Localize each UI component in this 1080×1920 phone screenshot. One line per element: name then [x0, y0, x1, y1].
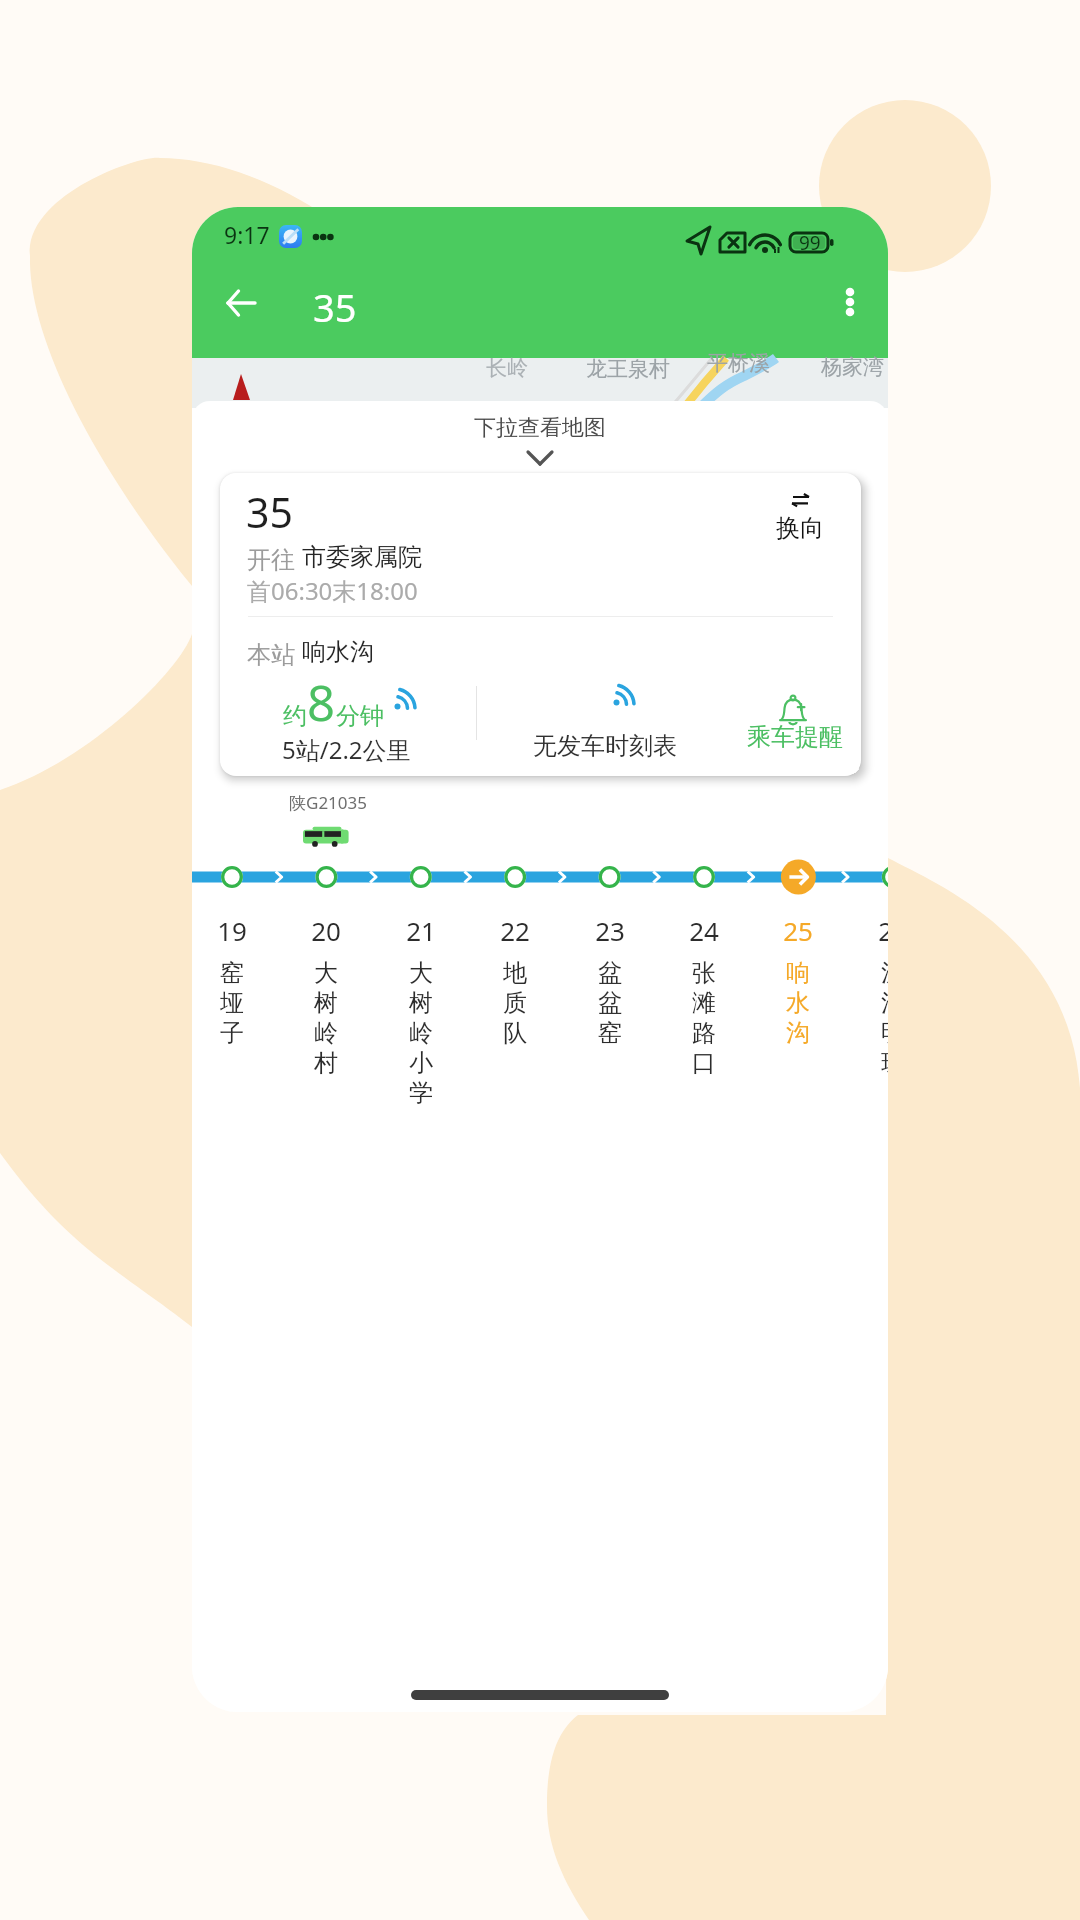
button[interactable]: 下拉查看地图: [192, 401, 888, 475]
staticText: 无发车时刻表: [533, 731, 677, 761]
button[interactable]: 20: [289, 913, 363, 1078]
staticText: 陕G21035: [289, 791, 367, 814]
staticText: 本站: [247, 637, 302, 670]
staticText: 杨家湾: [821, 354, 884, 380]
staticText: 首06:30末18:00: [247, 574, 418, 607]
staticText: 分钟: [336, 701, 384, 731]
staticText: 25: [783, 913, 813, 948]
staticText: 5站/2.2公里: [282, 733, 411, 766]
staticText: 市委家属院: [302, 542, 422, 572]
button[interactable]: 19: [195, 913, 269, 1048]
button[interactable]: 26: [856, 913, 888, 1078]
staticText: 9:17: [224, 219, 270, 250]
staticText: 平桥溪: [707, 350, 770, 376]
staticText: 大 树 岭 村: [314, 958, 338, 1078]
button[interactable]: 24: [667, 913, 741, 1078]
staticText: 响 水 沟: [786, 958, 810, 1048]
staticText: 龙王泉村: [586, 356, 670, 382]
staticText: 99: [799, 230, 821, 256]
staticText: 开往: [247, 542, 302, 575]
staticText: 21: [406, 913, 436, 948]
staticText: 约: [283, 701, 307, 731]
button[interactable]: 21: [384, 913, 458, 1108]
staticText: 24: [689, 913, 719, 948]
staticText: 窑 垭 子: [220, 958, 244, 1048]
button[interactable]: 22: [478, 913, 552, 1048]
staticText: 汉 江 明 珠: [881, 958, 888, 1078]
staticText: 大 树 岭 小 学: [409, 958, 433, 1108]
button[interactable]: More options: [819, 271, 881, 333]
staticText: 地 质 队: [503, 958, 527, 1048]
staticText: 20: [311, 913, 341, 948]
staticText: 盆 盆 窑: [598, 958, 622, 1048]
staticText: 下拉查看地图: [474, 414, 606, 442]
staticText: 长岭: [486, 355, 528, 381]
staticText: 张 滩 路 口: [692, 958, 716, 1078]
button[interactable]: 无发车时刻表: [505, 669, 705, 699]
button[interactable]: 乘车提醒: [715, 669, 861, 701]
staticText: 8: [307, 669, 336, 736]
staticText: 26: [878, 913, 888, 948]
staticText: 23: [595, 913, 625, 948]
button[interactable]: 换向: [740, 494, 860, 543]
staticText: 响水沟: [302, 637, 374, 667]
staticText: 19: [217, 913, 247, 948]
button[interactable]: 25: [761, 913, 835, 1048]
staticText: 乘车提醒: [747, 722, 843, 752]
staticText: 换向: [776, 513, 824, 543]
staticText: 35: [246, 484, 293, 540]
staticText: 22: [500, 913, 530, 948]
button[interactable]: 23: [573, 913, 647, 1048]
button[interactable]: 约: [266, 669, 432, 736]
staticText: 35: [313, 281, 357, 333]
button[interactable]: Back: [210, 272, 272, 334]
